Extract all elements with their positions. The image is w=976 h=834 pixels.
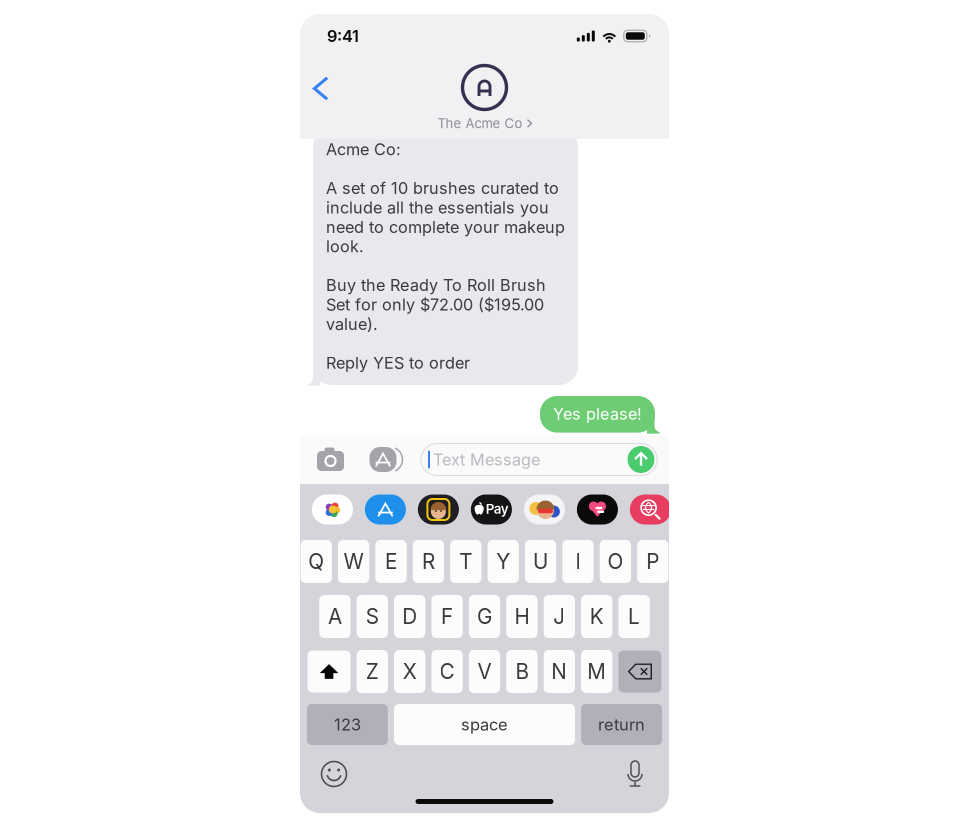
staticText: K (590, 604, 604, 629)
staticText: 123 (334, 715, 361, 734)
button[interactable]: D (394, 595, 425, 638)
staticText: X (403, 659, 417, 684)
button[interactable]: Digital Touch (577, 494, 618, 524)
staticText: T (459, 549, 472, 574)
button[interactable]: Camera (315, 440, 346, 478)
button[interactable]: O (600, 540, 631, 583)
staticText: L (628, 604, 640, 629)
staticText: Pay (486, 501, 509, 517)
button[interactable]: N (544, 650, 575, 693)
button[interactable]: U (525, 540, 556, 583)
button[interactable]: L (618, 595, 650, 638)
staticText: S (366, 604, 379, 629)
button[interactable]: J (544, 595, 575, 638)
staticText: return (598, 715, 645, 734)
button[interactable]: Emoji (317, 757, 351, 791)
button[interactable]: Memoji Stickers (524, 494, 565, 524)
button[interactable]: return (581, 704, 662, 745)
button[interactable]: Dictation (622, 757, 648, 791)
staticText: E (385, 549, 397, 574)
button[interactable]: Photos (312, 494, 353, 524)
button[interactable]: T (450, 540, 481, 583)
staticText: value). (326, 314, 378, 334)
staticText: 9:41 (327, 26, 359, 46)
staticText: W (344, 549, 364, 574)
button[interactable]: Memoji (418, 494, 459, 524)
button[interactable]: F (431, 595, 463, 638)
staticText: N (551, 659, 567, 684)
staticText: M (587, 659, 606, 684)
button[interactable]: X (394, 650, 425, 693)
button[interactable]: Images (630, 494, 671, 524)
staticText: A (328, 604, 342, 629)
staticText: A set of 10 brushes curated to (326, 178, 559, 198)
staticText: space (461, 715, 508, 734)
staticText: R (422, 549, 435, 574)
button[interactable]: A (319, 595, 350, 638)
button[interactable]: Shift (307, 650, 350, 692)
staticText: Text Message (433, 450, 540, 469)
staticText: O (607, 549, 623, 574)
staticText: look. (326, 237, 364, 256)
button[interactable]: 123 (307, 704, 388, 745)
staticText: B (515, 659, 528, 684)
button[interactable]: Apple Pay (471, 494, 512, 524)
staticText: G (477, 604, 492, 629)
staticText: H (514, 604, 529, 629)
staticText: F (441, 604, 453, 629)
button[interactable]: S (357, 595, 388, 638)
button[interactable]: Z (357, 650, 388, 693)
button[interactable]: B (506, 650, 537, 693)
button[interactable]: Delete (618, 650, 661, 692)
staticText: D (402, 604, 417, 629)
staticText: Set for only $72.00 ($195.00 (326, 295, 544, 314)
button[interactable]: K (581, 595, 612, 638)
staticText: Q (308, 549, 324, 574)
button[interactable]: M (581, 650, 612, 693)
button[interactable]: Send (627, 446, 654, 473)
staticText: U (533, 549, 548, 574)
staticText: Reply YES to order (326, 353, 470, 373)
staticText: need to complete your makeup (326, 217, 565, 237)
staticText: P (646, 549, 659, 574)
staticText: V (477, 659, 491, 684)
button[interactable]: Apps (368, 440, 398, 478)
staticText: I (575, 549, 580, 574)
button[interactable]: W (338, 540, 369, 583)
staticText: include all the essentials you (326, 198, 549, 217)
button[interactable]: C (431, 650, 463, 693)
button[interactable]: H (506, 595, 537, 638)
button[interactable]: App Store (365, 494, 406, 524)
staticText: Acme Co: (326, 140, 401, 159)
button[interactable]: R (413, 540, 444, 583)
staticText: Buy the Ready To Roll Brush (326, 275, 546, 295)
staticText: J (553, 604, 565, 629)
button[interactable]: Back (302, 66, 340, 110)
staticText: Z (366, 659, 379, 684)
button[interactable]: Y (487, 540, 519, 583)
button[interactable]: I (562, 540, 594, 583)
button[interactable]: V (469, 650, 500, 693)
staticText: The Acme Co (437, 115, 522, 131)
button[interactable]: E (375, 540, 407, 583)
button[interactable]: P (637, 540, 668, 583)
button[interactable]: G (469, 595, 500, 638)
staticText: Yes please! (553, 404, 642, 424)
button[interactable]: space (394, 704, 575, 745)
button[interactable]: Q (300, 540, 332, 583)
staticText: Y (496, 549, 510, 574)
staticText: C (440, 659, 455, 684)
